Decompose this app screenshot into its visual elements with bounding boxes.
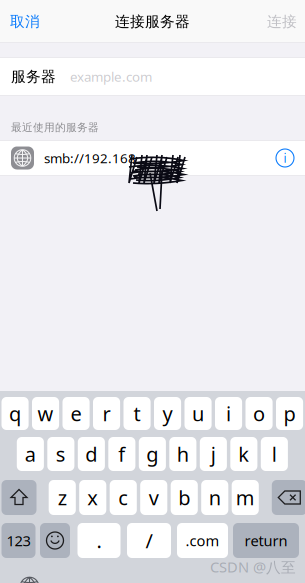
button[interactable]: Delete — [272, 480, 305, 515]
button[interactable]: q — [1, 397, 29, 430]
button[interactable]: r — [93, 397, 120, 430]
staticText: . — [96, 527, 101, 554]
button[interactable]: / — [127, 523, 171, 558]
staticText: s — [56, 441, 66, 467]
staticText: i — [226, 400, 231, 427]
button[interactable]: e — [62, 397, 90, 430]
button[interactable]: smb://192.168 — [0, 140, 305, 176]
staticText: / — [145, 527, 152, 554]
staticText: h — [177, 441, 189, 467]
staticText: 连接服务器 — [115, 12, 190, 30]
staticText: u — [192, 400, 204, 427]
button[interactable]: t — [123, 397, 151, 430]
staticText: i — [283, 150, 286, 166]
button[interactable]: m — [232, 480, 259, 515]
staticText: 服务器 — [11, 67, 56, 85]
staticText: k — [238, 441, 249, 467]
button[interactable]: 取消 — [0, 0, 50, 43]
staticText: p — [284, 400, 296, 427]
staticText: return — [244, 531, 287, 550]
button[interactable]: c — [110, 480, 137, 515]
button[interactable]: b — [171, 480, 198, 515]
staticText: b — [178, 484, 190, 511]
staticText: n — [209, 484, 221, 511]
staticText: 最近使用的服务器 — [11, 121, 99, 134]
button[interactable]: y — [154, 397, 181, 430]
button[interactable]: g — [139, 437, 166, 471]
button[interactable]: u — [184, 397, 212, 430]
staticText: c — [118, 484, 128, 511]
staticText: e — [70, 400, 81, 427]
staticText: j — [211, 441, 216, 467]
staticText: r — [102, 400, 110, 427]
button[interactable]: f — [108, 437, 135, 471]
button[interactable]: w — [32, 397, 59, 430]
staticText: q — [9, 400, 21, 427]
button[interactable]: o — [245, 397, 273, 430]
staticText: o — [253, 400, 265, 427]
button[interactable]: l — [261, 437, 288, 471]
button[interactable]: z — [49, 480, 76, 515]
button[interactable]: return — [233, 523, 299, 558]
staticText: x — [87, 484, 98, 511]
staticText: v — [149, 484, 159, 511]
button[interactable]: s — [47, 437, 74, 471]
staticText: t — [134, 400, 141, 427]
button[interactable]: .com — [177, 523, 228, 558]
staticText: w — [37, 400, 53, 427]
staticText: smb://192.168 — [44, 149, 136, 167]
staticText: CSDN @八至 — [210, 557, 296, 577]
button[interactable]: Emoji keyboard — [40, 523, 70, 558]
button[interactable]: 123 — [1, 523, 35, 558]
staticText: m — [236, 484, 255, 511]
button[interactable]: k — [230, 437, 257, 471]
button[interactable]: j — [200, 437, 227, 471]
button[interactable]: p — [276, 397, 303, 430]
button[interactable]: n — [201, 480, 228, 515]
button[interactable]: . — [77, 523, 120, 558]
staticText: example.com — [70, 68, 152, 85]
button[interactable]: 连接 — [259, 0, 305, 43]
button[interactable]: a — [17, 437, 44, 471]
staticText: 123 — [6, 531, 30, 550]
button[interactable]: d — [78, 437, 105, 471]
button[interactable]: x — [79, 480, 106, 515]
staticText: f — [118, 441, 125, 467]
button[interactable]: Shift — [1, 480, 36, 515]
staticText: a — [25, 441, 36, 467]
staticText: 取消 — [10, 12, 40, 30]
staticText: .com — [185, 531, 219, 550]
staticText: z — [58, 484, 67, 511]
button[interactable]: h — [169, 437, 196, 471]
staticText: 连接 — [267, 12, 297, 30]
staticText: l — [272, 441, 277, 467]
button[interactable]: i — [215, 397, 242, 430]
button[interactable]: v — [140, 480, 167, 515]
staticText: g — [146, 441, 158, 467]
staticText: y — [163, 400, 173, 427]
staticText: d — [85, 441, 97, 467]
